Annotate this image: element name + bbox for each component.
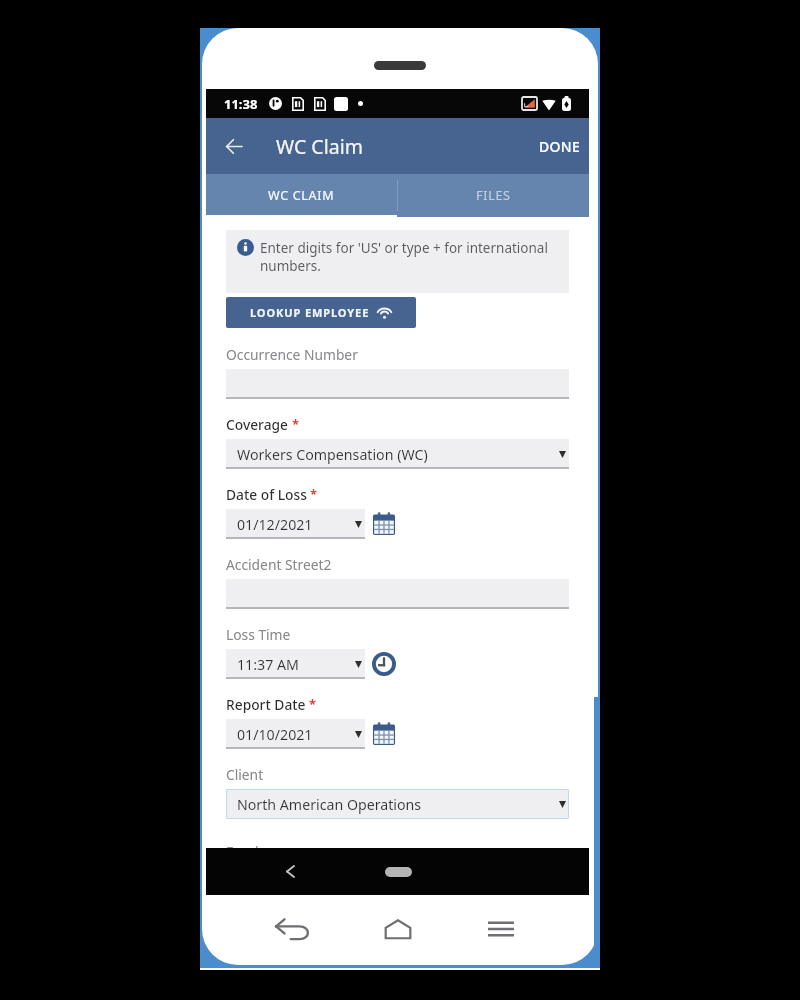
button[interactable]: Pick date	[371, 511, 397, 537]
staticText: Occurrence Number	[226, 345, 358, 364]
staticText: 11:38	[224, 95, 258, 113]
staticText: Report Date	[226, 695, 306, 714]
button[interactable]: 01/12/2021	[226, 509, 365, 539]
button[interactable]: FILES	[398, 174, 589, 217]
staticText: FILES	[476, 187, 511, 204]
staticText: Client	[226, 765, 264, 784]
staticText: Loss Time	[226, 625, 291, 644]
staticText: Enter digits for 'US' or type + for inte…	[260, 239, 561, 275]
staticText: Workers Compensation (WC)	[237, 445, 428, 464]
staticText: 11:37 AM	[237, 655, 299, 674]
staticText: 01/10/2021	[237, 725, 313, 744]
staticText: Accident Street2	[226, 555, 332, 574]
button[interactable]: 01/10/2021	[226, 719, 365, 749]
staticText: *	[292, 415, 300, 433]
button[interactable]: DONE	[533, 131, 587, 162]
staticText: 01/12/2021	[237, 515, 313, 534]
button[interactable]: Back	[218, 130, 250, 162]
button[interactable]	[226, 369, 569, 399]
staticText: Employee	[226, 842, 290, 848]
button[interactable]: Menu	[481, 909, 521, 949]
button[interactable]: 11:37 AM	[226, 649, 365, 679]
button[interactable]: LOOKUP EMPLOYEE	[226, 297, 416, 328]
button[interactable]	[226, 579, 569, 609]
staticText: Date of Loss	[226, 485, 307, 504]
staticText: WC Claim	[276, 133, 363, 160]
staticText: *	[309, 695, 317, 713]
button[interactable]: Pick date	[371, 721, 397, 747]
button[interactable]: Pick time	[371, 651, 397, 677]
button[interactable]: Workers Compensation (WC)	[226, 439, 569, 469]
staticText: DONE	[539, 137, 581, 156]
staticText: LOOKUP EMPLOYEE	[250, 305, 370, 320]
button[interactable]: WC CLAIM	[206, 174, 397, 217]
staticText: *	[310, 485, 318, 503]
staticText: Coverage	[226, 415, 289, 434]
button[interactable]: Home	[378, 909, 418, 949]
button[interactable]: North American Operations	[226, 789, 569, 819]
staticText: North American Operations	[237, 795, 422, 814]
button[interactable]: Back	[272, 909, 312, 949]
staticText: WC CLAIM	[268, 187, 335, 204]
